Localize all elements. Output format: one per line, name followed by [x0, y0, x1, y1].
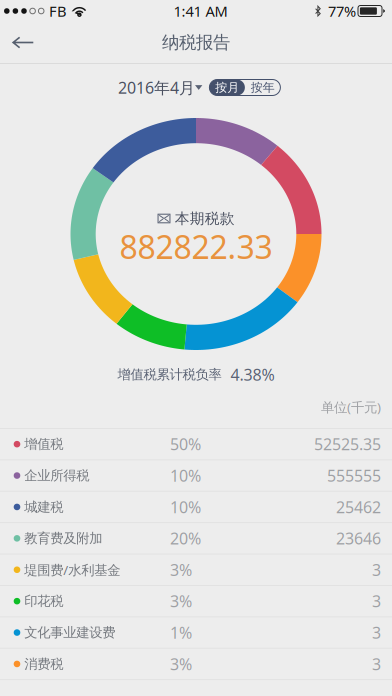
button[interactable]: 消费税: [0, 649, 392, 680]
staticText: 教育费及附加: [24, 530, 102, 547]
staticText: 1%: [170, 622, 192, 643]
staticText: 3%: [170, 590, 192, 612]
staticText: 本期税款: [175, 209, 235, 227]
staticText: 10%: [170, 496, 201, 517]
staticText: 消费税: [24, 656, 63, 672]
staticText: 3: [372, 559, 381, 580]
button[interactable]: 2016年4月: [118, 77, 202, 98]
button[interactable]: 教育费及附加: [0, 523, 392, 555]
staticText: 20%: [170, 528, 201, 549]
staticText: 1:41 AM: [173, 1, 227, 21]
button[interactable]: 企业所得税: [0, 460, 392, 492]
staticText: 3%: [170, 559, 192, 580]
button[interactable]: 印花税: [0, 586, 392, 617]
button[interactable]: Back: [0, 22, 48, 63]
button[interactable]: 增值税: [0, 429, 392, 460]
staticText: 50%: [170, 433, 201, 455]
staticText: 3: [372, 653, 381, 674]
staticText: 77%: [328, 1, 356, 21]
staticText: 52525.35: [314, 433, 381, 455]
staticText: 2016年4月: [118, 77, 195, 98]
staticText: 增值税累计税负率: [117, 366, 221, 383]
staticText: FB: [49, 1, 67, 21]
staticText: 纳税报告: [162, 32, 230, 53]
staticText: 单位(千元): [321, 398, 381, 416]
button[interactable]: 按月: [209, 79, 245, 95]
staticText: 增值税: [24, 436, 63, 452]
staticText: 文化事业建设费: [24, 624, 115, 641]
staticText: 企业所得税: [24, 467, 89, 484]
staticText: 25462: [336, 496, 381, 517]
staticText: 按月: [215, 80, 239, 95]
staticText: 按年: [251, 80, 275, 95]
staticText: 10%: [170, 465, 201, 486]
button[interactable]: 城建税: [0, 492, 392, 523]
staticText: 3%: [170, 653, 192, 674]
staticText: 555555: [327, 465, 381, 486]
button[interactable]: 文化事业建设费: [0, 617, 392, 649]
staticText: 3: [372, 622, 381, 643]
button[interactable]: 堤围费/水利基金: [0, 555, 392, 586]
staticText: 城建税: [24, 499, 63, 515]
button[interactable]: 按年: [245, 79, 280, 95]
staticText: 印花税: [24, 593, 63, 609]
staticText: 882822.33: [119, 225, 272, 268]
staticText: 4.38%: [230, 364, 274, 385]
staticText: 堤围费/水利基金: [24, 561, 120, 579]
staticText: 3: [372, 590, 381, 612]
staticText: 23646: [336, 528, 381, 549]
